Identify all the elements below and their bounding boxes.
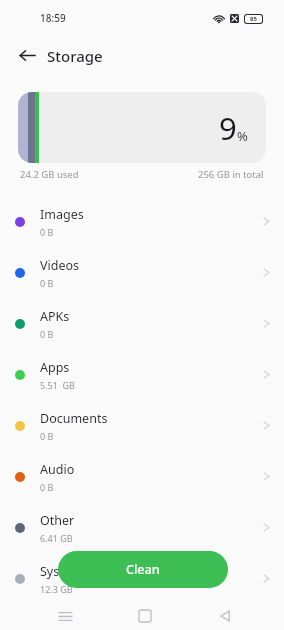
staticText: % <box>237 127 248 145</box>
staticText: Images <box>40 206 84 223</box>
staticText: 0 B <box>40 277 54 289</box>
staticText: 0 B <box>40 430 54 442</box>
button[interactable]: System <box>0 553 284 604</box>
staticText: 0 B <box>40 481 54 493</box>
button[interactable]: APKs <box>0 298 284 349</box>
staticText: Clean <box>126 561 160 578</box>
button[interactable]: Audio <box>0 451 284 502</box>
staticText: APKs <box>40 308 70 325</box>
button[interactable]: Apps <box>0 349 284 400</box>
button[interactable]: Home <box>128 602 162 630</box>
staticText: 85 <box>250 15 257 23</box>
staticText: 24.2 GB used <box>20 168 79 181</box>
staticText: 5.51 GB <box>40 379 75 391</box>
staticText: Documents <box>40 410 108 427</box>
button[interactable]: Recent apps <box>48 602 82 630</box>
staticText: 6.41 GB <box>40 532 73 544</box>
staticText: 0 B <box>40 328 54 340</box>
staticText: Storage <box>47 46 103 66</box>
staticText: Apps <box>40 359 70 376</box>
staticText: Videos <box>40 257 80 274</box>
staticText: 12.3 GB <box>40 583 73 595</box>
button[interactable]: Documents <box>0 400 284 451</box>
button[interactable]: Images <box>0 196 284 247</box>
button[interactable]: Other <box>0 502 284 553</box>
button[interactable]: Videos <box>0 247 284 298</box>
staticText: Other <box>40 512 75 529</box>
staticText: 9 <box>219 107 237 149</box>
button[interactable]: Back <box>10 38 44 72</box>
staticText: 256 GB in total <box>198 168 264 181</box>
button[interactable]: Clean <box>58 551 228 588</box>
staticText: System <box>40 563 83 580</box>
staticText: Audio <box>40 461 75 478</box>
button[interactable]: Back <box>208 602 242 630</box>
staticText: 18:59 <box>40 11 66 25</box>
staticText: 0 B <box>40 226 54 238</box>
button[interactable]: 9 <box>18 92 266 163</box>
